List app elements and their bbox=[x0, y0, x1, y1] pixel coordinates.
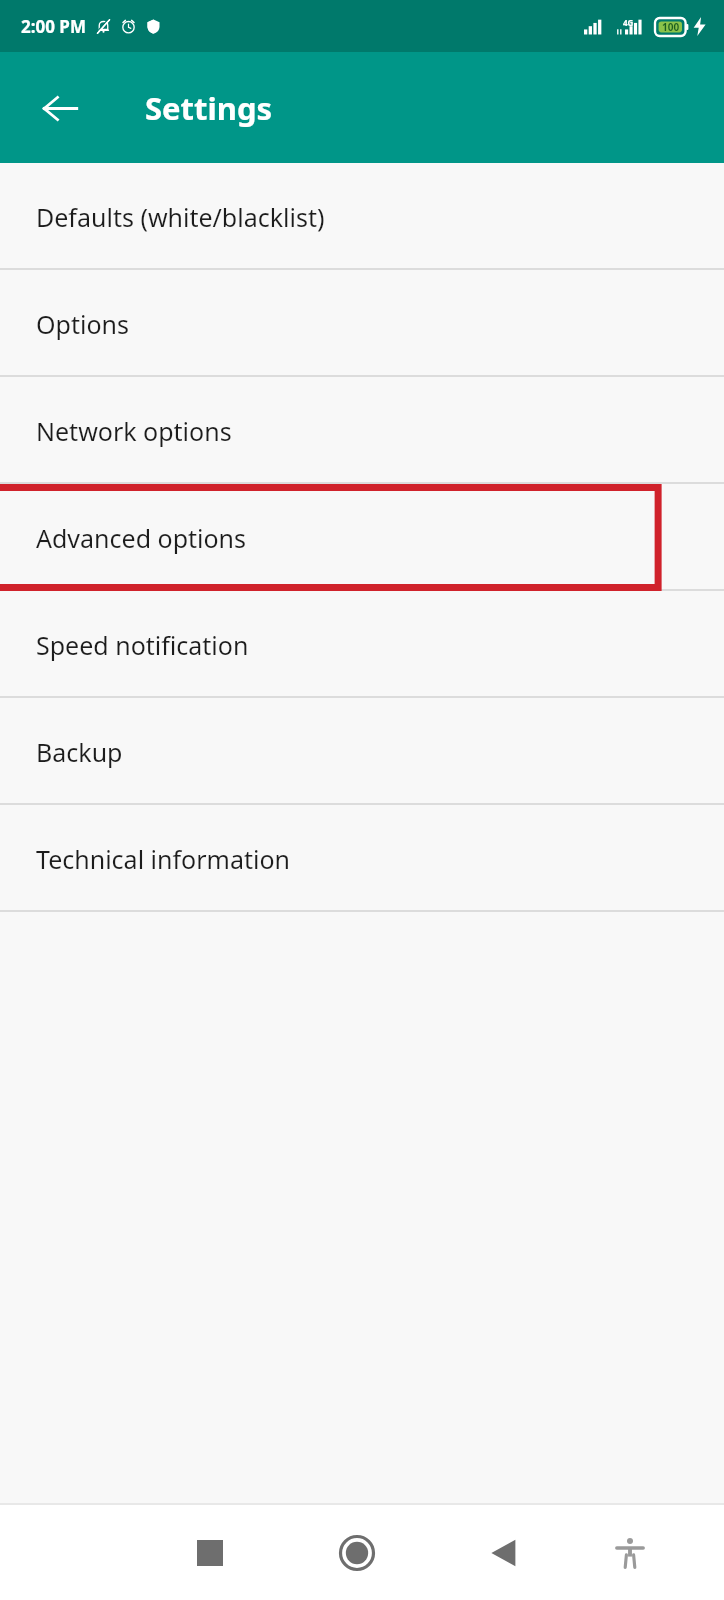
staticText: Backup bbox=[36, 735, 123, 769]
staticText: Defaults (white/blacklist) bbox=[36, 200, 325, 234]
button[interactable]: Back bbox=[22, 70, 98, 146]
staticText: 2:00 PM bbox=[21, 15, 86, 38]
button[interactable]: Options bbox=[0, 270, 724, 377]
button[interactable]: Technical information bbox=[0, 805, 724, 912]
button[interactable]: Backup bbox=[0, 698, 724, 805]
button[interactable]: Recent apps bbox=[168, 1511, 252, 1595]
button[interactable]: Speed notification bbox=[0, 591, 724, 698]
staticText: Settings bbox=[145, 87, 273, 129]
staticText: Speed notification bbox=[36, 628, 249, 662]
button[interactable]: Network options bbox=[0, 377, 724, 484]
staticText: Technical information bbox=[36, 842, 290, 876]
button[interactable]: Defaults (white/blacklist) bbox=[0, 163, 724, 270]
staticText: Options bbox=[36, 307, 129, 341]
staticText: Network options bbox=[36, 414, 232, 448]
button[interactable]: Home bbox=[315, 1511, 399, 1595]
button[interactable]: Accessibility bbox=[588, 1511, 672, 1595]
staticText: Advanced options bbox=[36, 521, 247, 555]
button[interactable]: Advanced options bbox=[0, 484, 724, 591]
staticText: 100 bbox=[662, 20, 680, 34]
button[interactable]: Back bbox=[462, 1511, 546, 1595]
staticText: 4G bbox=[623, 17, 634, 28]
